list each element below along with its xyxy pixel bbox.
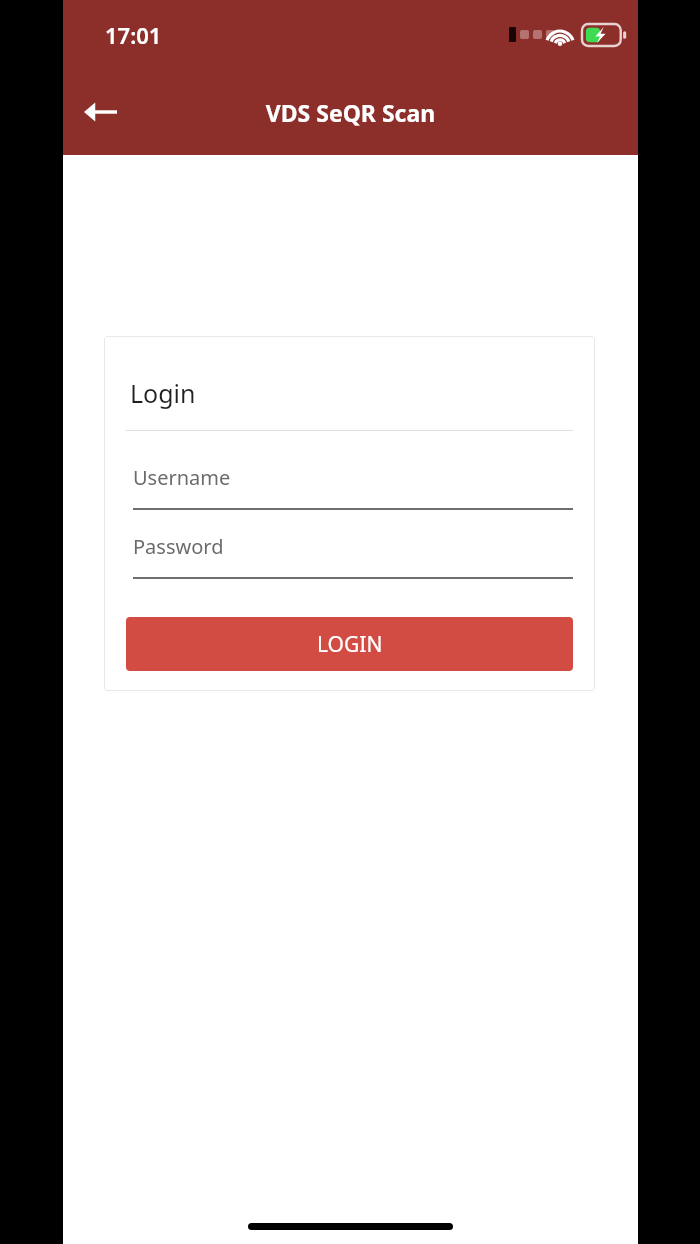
button[interactable]: Back [76, 87, 125, 136]
button[interactable]: LOGIN [126, 617, 573, 671]
staticText: Password [133, 533, 224, 560]
staticText: Username [133, 464, 231, 491]
button[interactable]: Password [126, 517, 573, 585]
staticText: 17:01 [105, 20, 162, 50]
staticText: Login [130, 376, 196, 410]
button[interactable]: Username [126, 448, 573, 516]
staticText: VDS SeQR Scan [63, 97, 638, 128]
staticText: LOGIN [317, 630, 383, 659]
